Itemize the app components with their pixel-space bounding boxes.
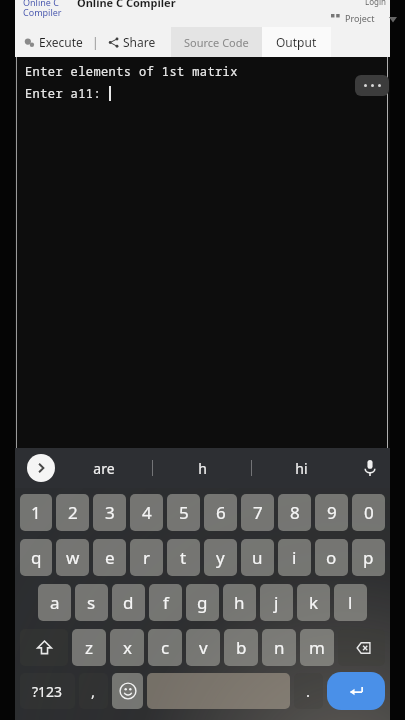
button[interactable]: 1 [20,494,52,531]
button[interactable]: d [112,584,145,621]
staticText: d [123,591,134,614]
button[interactable]: Execute [21,34,86,50]
staticText: . [306,681,311,701]
button[interactable]: p [352,539,385,576]
button[interactable]: 6 [204,494,237,531]
button[interactable]: 8 [278,494,311,531]
staticText: x [123,636,132,659]
staticText: g [197,591,208,614]
staticText: j [274,591,279,614]
staticText: Output [276,34,317,50]
button[interactable]: h [153,448,251,488]
staticText: n [274,636,285,659]
staticText: Online C [23,0,59,8]
button[interactable]: hi [252,448,350,488]
button[interactable]: Enter [327,672,385,710]
button[interactable]: 2 [56,494,89,531]
staticText: Share [123,34,156,50]
staticText: s [87,591,96,614]
staticText: h [234,591,245,614]
button[interactable]: r [130,539,163,576]
staticText: Online C Compiler [77,0,176,10]
button[interactable]: y [204,539,237,576]
button[interactable]: t [167,539,200,576]
button[interactable]: x [110,629,144,666]
button[interactable]: , [79,673,108,709]
staticText: e [105,546,115,569]
staticText: 5 [179,501,189,524]
button[interactable]: Backspace [338,629,385,666]
staticText: 3 [105,501,115,524]
staticText: 0 [364,501,374,524]
staticText: 2 [68,501,78,524]
staticText: are [93,459,115,478]
button[interactable]: k [297,584,330,621]
staticText: c [161,636,170,659]
staticText: r [143,546,151,569]
button[interactable]: a [38,584,71,621]
button[interactable]: j [260,584,293,621]
button[interactable]: 0 [352,494,385,531]
button[interactable]: are [55,448,152,488]
staticText: 9 [327,501,337,524]
button[interactable]: 7 [241,494,274,531]
button[interactable]: l [334,584,367,621]
staticText: Enter elements of 1st matrix [25,63,238,79]
button[interactable]: Share [105,34,159,50]
staticText: i [292,546,297,569]
button[interactable]: ?123 [20,673,75,709]
button[interactable]: z [72,629,106,666]
button[interactable]: . [294,673,323,709]
staticText: Execute [39,34,83,50]
button[interactable]: v [186,629,220,666]
staticText: Enter a11: [25,85,109,101]
staticText: u [252,546,263,569]
button[interactable]: 5 [167,494,200,531]
button[interactable]: s [75,584,108,621]
staticText: | [92,34,99,50]
button[interactable]: Emoji [112,673,143,709]
button[interactable]: Space [147,673,290,709]
staticText: Source Code [184,35,249,50]
staticText: 6 [216,501,226,524]
staticText: f [163,591,169,614]
staticText: h [198,459,207,478]
button[interactable]: Shift [20,629,68,666]
staticText: o [326,546,337,569]
staticText: Compiler [23,6,62,18]
button[interactable]: 9 [315,494,348,531]
button[interactable]: f [149,584,182,621]
staticText: w [66,546,80,569]
button[interactable]: More suggestions [27,454,55,482]
staticText: 8 [290,501,300,524]
staticText: ?123 [32,682,63,701]
staticText: hi [295,459,308,478]
staticText: z [85,636,93,659]
button[interactable]: m [300,629,334,666]
button[interactable]: c [148,629,182,666]
button[interactable]: u [241,539,274,576]
button[interactable]: b [224,629,258,666]
button[interactable]: i [278,539,311,576]
staticText: t [180,546,187,569]
button[interactable]: n [262,629,296,666]
staticText: Login [365,0,386,7]
button[interactable]: q [20,539,52,576]
button[interactable]: Output [262,27,331,57]
staticText: a [50,591,60,614]
staticText: 7 [253,501,263,524]
button[interactable]: h [223,584,256,621]
button[interactable]: More options [355,75,389,96]
button[interactable]: Voice input [350,448,390,488]
button[interactable]: Source Code [171,27,262,57]
button[interactable]: o [315,539,348,576]
button[interactable]: w [56,539,89,576]
staticText: Project [345,12,375,24]
button[interactable]: 4 [130,494,163,531]
staticText: y [216,546,225,569]
button[interactable]: g [186,584,219,621]
button[interactable]: 3 [93,494,126,531]
button[interactable]: e [93,539,126,576]
staticText: m [309,636,325,659]
staticText: p [363,546,374,569]
